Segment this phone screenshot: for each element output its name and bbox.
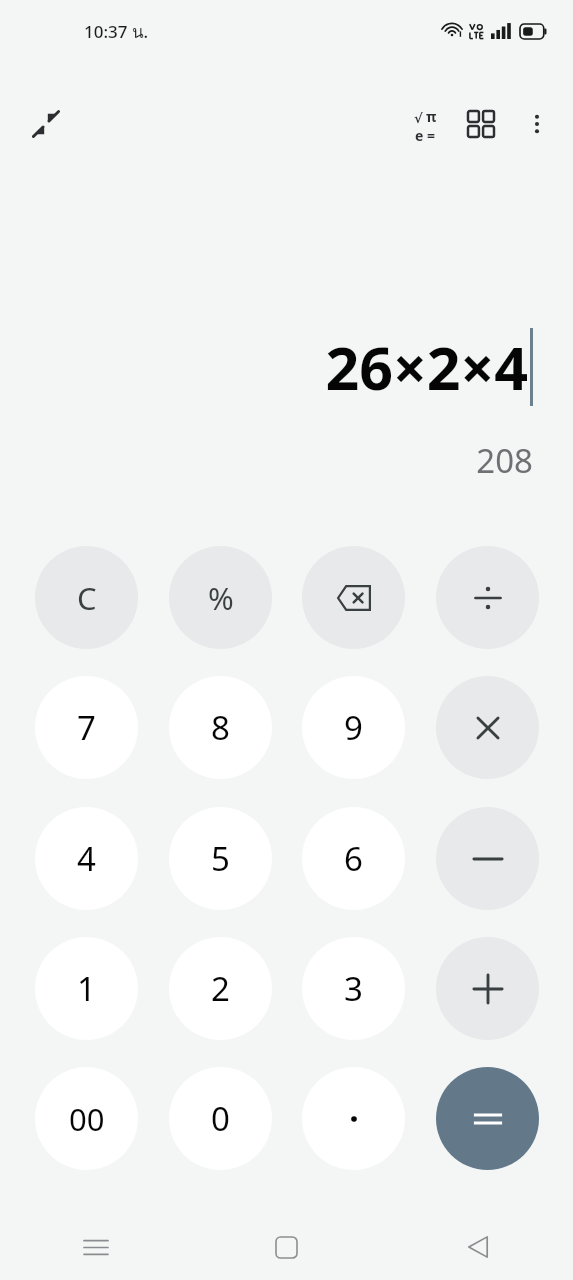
button[interactable]: Collapse (18, 96, 74, 152)
staticText: 1 (77, 966, 96, 1011)
button[interactable]: Back (382, 1214, 573, 1280)
button[interactable]: 9 (302, 676, 405, 779)
button[interactable]: Recent apps (0, 1214, 191, 1280)
staticText: 3 (344, 966, 363, 1011)
button[interactable]: 2 (169, 937, 272, 1040)
button[interactable]: Multiply (436, 676, 539, 779)
staticText: = (427, 126, 436, 141)
staticText: 2 (211, 966, 230, 1011)
staticText: 8 (211, 705, 230, 750)
staticText: 0 (211, 1096, 230, 1141)
button[interactable]: 6 (302, 807, 405, 910)
button[interactable]: 8 (169, 676, 272, 779)
staticText: π (426, 107, 437, 126)
staticText: 00 (69, 1098, 105, 1140)
staticText: 6 (344, 836, 363, 881)
button[interactable]: % (169, 546, 272, 649)
button[interactable]: More options (509, 96, 565, 152)
staticText: % (208, 577, 234, 619)
staticText: 5 (211, 836, 230, 881)
button[interactable]: Scientific calculator (397, 96, 453, 152)
button[interactable]: 5 (169, 807, 272, 910)
button[interactable]: 0 (169, 1067, 272, 1170)
button[interactable]: 4 (35, 807, 138, 910)
button[interactable]: 7 (35, 676, 138, 779)
button[interactable]: Minus (436, 807, 539, 910)
staticText: √ (414, 111, 423, 126)
staticText: 4 (77, 836, 96, 881)
button[interactable]: 1 (35, 937, 138, 1040)
button[interactable]: Home (191, 1214, 382, 1280)
button[interactable]: C (35, 546, 138, 649)
staticText: 10:37 น. (84, 18, 149, 45)
staticText: 7 (77, 705, 96, 750)
staticText: 208 (476, 438, 533, 483)
button[interactable]: Decimal point (302, 1067, 405, 1170)
staticText: 9 (344, 705, 363, 750)
button[interactable]: Equals (436, 1067, 539, 1170)
button[interactable]: Divide (436, 546, 539, 649)
staticText: C (77, 577, 97, 619)
button[interactable]: 00 (35, 1067, 138, 1170)
staticText: 26×2×4 (325, 327, 528, 407)
staticText: e (415, 126, 424, 141)
button[interactable]: Unit converter (453, 96, 509, 152)
button[interactable]: Backspace (302, 546, 405, 649)
button[interactable]: Plus (436, 937, 539, 1040)
button[interactable]: 3 (302, 937, 405, 1040)
